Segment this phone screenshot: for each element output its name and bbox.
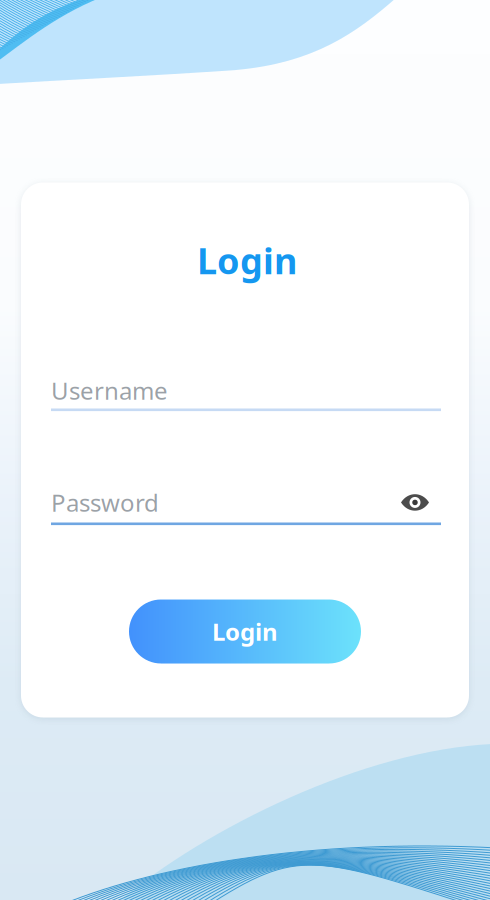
- staticText: Password: [51, 486, 159, 518]
- staticText: Login: [197, 236, 297, 284]
- button[interactable]: Show password: [401, 493, 429, 512]
- button[interactable]: Login: [129, 599, 361, 663]
- staticText: Login: [212, 616, 278, 647]
- staticText: Username: [51, 374, 168, 406]
